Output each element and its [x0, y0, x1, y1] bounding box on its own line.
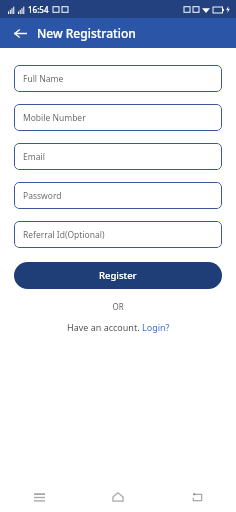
button[interactable]: Mobile Number: [14, 104, 222, 131]
staticText: 16:54: [28, 4, 49, 15]
staticText: Password: [23, 190, 62, 202]
button[interactable]: Password: [14, 182, 222, 209]
button[interactable]: Email: [14, 143, 222, 170]
button[interactable]: Register: [14, 262, 222, 289]
staticText: OR: [0, 301, 236, 312]
button[interactable]: Back: [10, 23, 30, 43]
button[interactable]: Referral Id(Optional): [14, 221, 222, 248]
staticText: New Registration: [37, 25, 136, 41]
staticText: Register: [99, 269, 137, 282]
button[interactable]: Login?: [142, 321, 170, 333]
button[interactable]: Home: [100, 482, 136, 512]
staticText: Login?: [142, 321, 170, 333]
staticText: Mobile Number: [23, 112, 86, 124]
staticText: Have an account.: [67, 321, 142, 333]
staticText: Referral Id(Optional): [23, 229, 105, 241]
staticText: Email: [23, 151, 45, 163]
button[interactable]: Recents: [21, 482, 57, 512]
button[interactable]: Back: [179, 482, 215, 512]
button[interactable]: Full Name: [14, 65, 222, 92]
staticText: Full Name: [23, 73, 64, 85]
